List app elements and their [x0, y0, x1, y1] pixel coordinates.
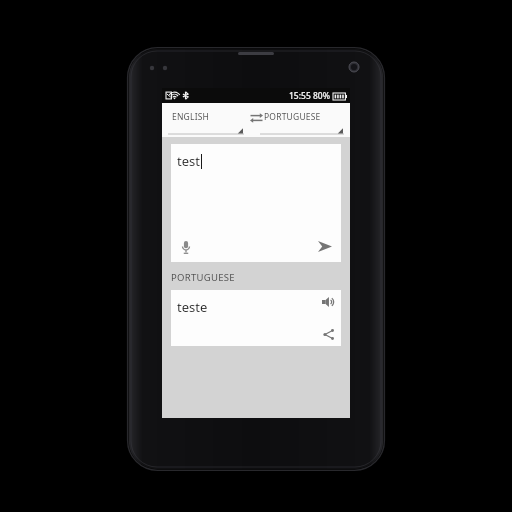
button[interactable]: ENGLISH: [168, 105, 244, 135]
button[interactable]: teste: [171, 290, 341, 346]
staticText: test: [177, 152, 200, 170]
button[interactable]: test: [171, 144, 341, 262]
button[interactable]: Share: [318, 324, 338, 344]
button[interactable]: Listen: [318, 292, 338, 312]
button[interactable]: Voice input: [175, 236, 197, 258]
button[interactable]: PORTUGUESE: [260, 105, 344, 135]
staticText: 15:55 80%: [289, 90, 330, 102]
staticText: PORTUGUESE: [171, 271, 235, 284]
staticText: PORTUGUESE: [264, 111, 321, 123]
button[interactable]: Translate: [313, 234, 337, 258]
staticText: teste: [177, 298, 208, 316]
button[interactable]: Swap languages: [245, 107, 267, 129]
staticText: ENGLISH: [172, 111, 210, 123]
